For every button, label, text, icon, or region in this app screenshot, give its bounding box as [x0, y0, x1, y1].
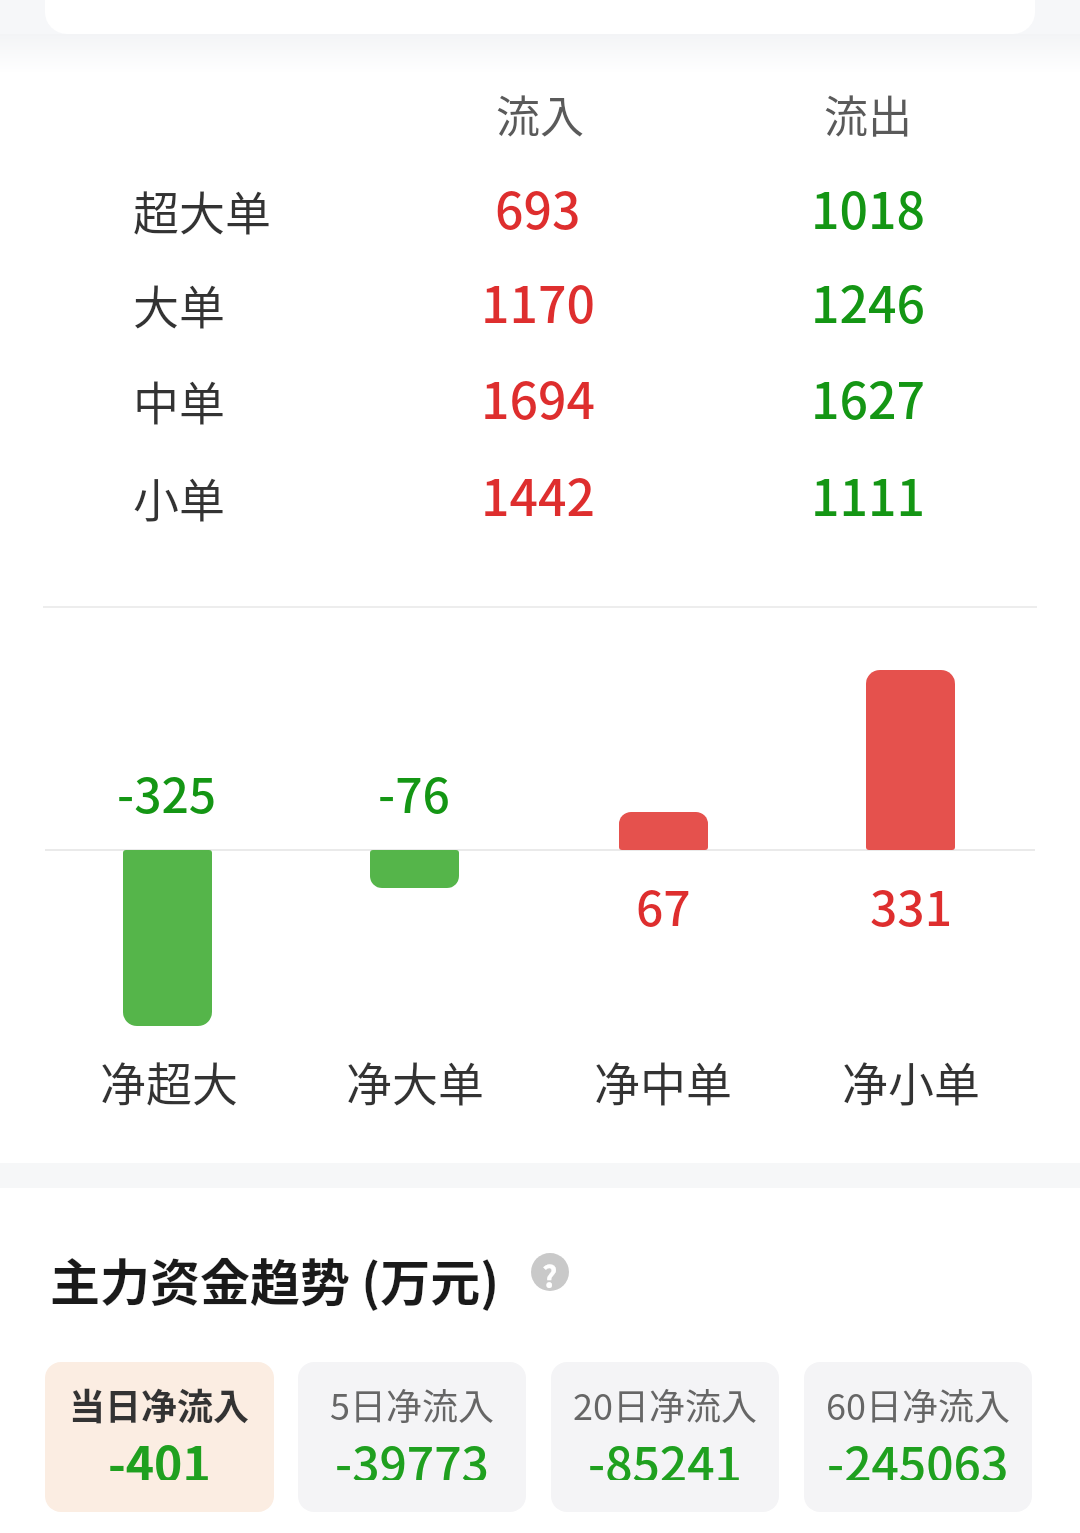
- button[interactable]: 60日净流入: [804, 1362, 1032, 1512]
- staticText: 67: [636, 870, 691, 940]
- staticText: -401: [108, 1426, 211, 1480]
- staticText: 当日净流入: [69, 1378, 250, 1428]
- staticText: 超大单: [133, 177, 271, 244]
- staticText: -325: [117, 757, 217, 827]
- staticText: ?: [542, 1253, 558, 1291]
- button[interactable]: 当日净流入: [45, 1362, 274, 1512]
- staticText: 中单: [133, 367, 225, 434]
- staticText: 净大单: [346, 1048, 484, 1115]
- staticText: 大单: [133, 271, 225, 338]
- staticText: -39773: [335, 1426, 489, 1480]
- staticText: 1170: [481, 265, 595, 335]
- staticText: 流出: [824, 82, 912, 146]
- staticText: 净小单: [842, 1048, 980, 1115]
- staticText: 1246: [811, 265, 925, 335]
- staticText: 1442: [481, 458, 595, 528]
- staticText: 1627: [811, 361, 925, 431]
- staticText: 主力资金趋势 (万元): [50, 1243, 500, 1313]
- staticText: 20日净流入: [573, 1378, 757, 1428]
- staticText: 流入: [496, 82, 584, 146]
- staticText: 净超大: [100, 1048, 238, 1115]
- staticText: 5日净流入: [330, 1378, 494, 1428]
- staticText: 净中单: [594, 1048, 732, 1115]
- staticText: 60日净流入: [826, 1378, 1010, 1428]
- staticText: 小单: [133, 464, 225, 531]
- button[interactable]: ?: [531, 1253, 569, 1291]
- staticText: 1111: [811, 458, 925, 528]
- staticText: 693: [495, 171, 581, 241]
- staticText: 1694: [481, 361, 595, 431]
- staticText: 331: [870, 870, 953, 940]
- staticText: -85241: [588, 1426, 742, 1480]
- staticText: -245063: [827, 1426, 1009, 1480]
- staticText: 1018: [811, 171, 925, 241]
- staticText: -76: [378, 757, 450, 827]
- button[interactable]: 5日净流入: [298, 1362, 526, 1512]
- button[interactable]: 20日净流入: [551, 1362, 779, 1512]
